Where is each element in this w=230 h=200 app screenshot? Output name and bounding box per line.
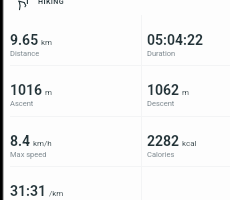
staticText: 31:31 [10,183,47,199]
staticText: km/h [33,139,52,148]
staticText: m [182,88,190,97]
staticText: m [45,88,53,97]
staticText: km [41,38,53,47]
staticText: Distance [10,49,40,58]
staticText: /km [49,189,64,198]
staticText: Ascent [10,99,34,108]
staticText: 1016 [10,82,43,98]
button[interactable]: 2282 [147,116,230,167]
staticText: HIKING [38,0,64,5]
button[interactable]: 9.65 [10,15,138,66]
button[interactable]: 31:31 [10,166,138,200]
staticText: Duration [147,49,176,58]
staticText: 05:04:22 [147,32,204,48]
button[interactable]: 1016 [10,65,138,116]
staticText: 8.4 [10,133,31,149]
button[interactable]: 1062 [147,65,230,116]
staticText: Max speed [10,150,47,159]
button[interactable]: 8.4 [10,116,138,167]
staticText: Descent [147,99,175,108]
staticText: 9.65 [10,32,39,48]
button[interactable]: HIKING [14,0,76,12]
button[interactable]: 05:04:22 [147,15,230,66]
staticText: 2282 [147,133,180,149]
staticText: 1062 [147,82,180,98]
staticText: Calories [147,150,175,159]
staticText: kcal [182,139,197,148]
